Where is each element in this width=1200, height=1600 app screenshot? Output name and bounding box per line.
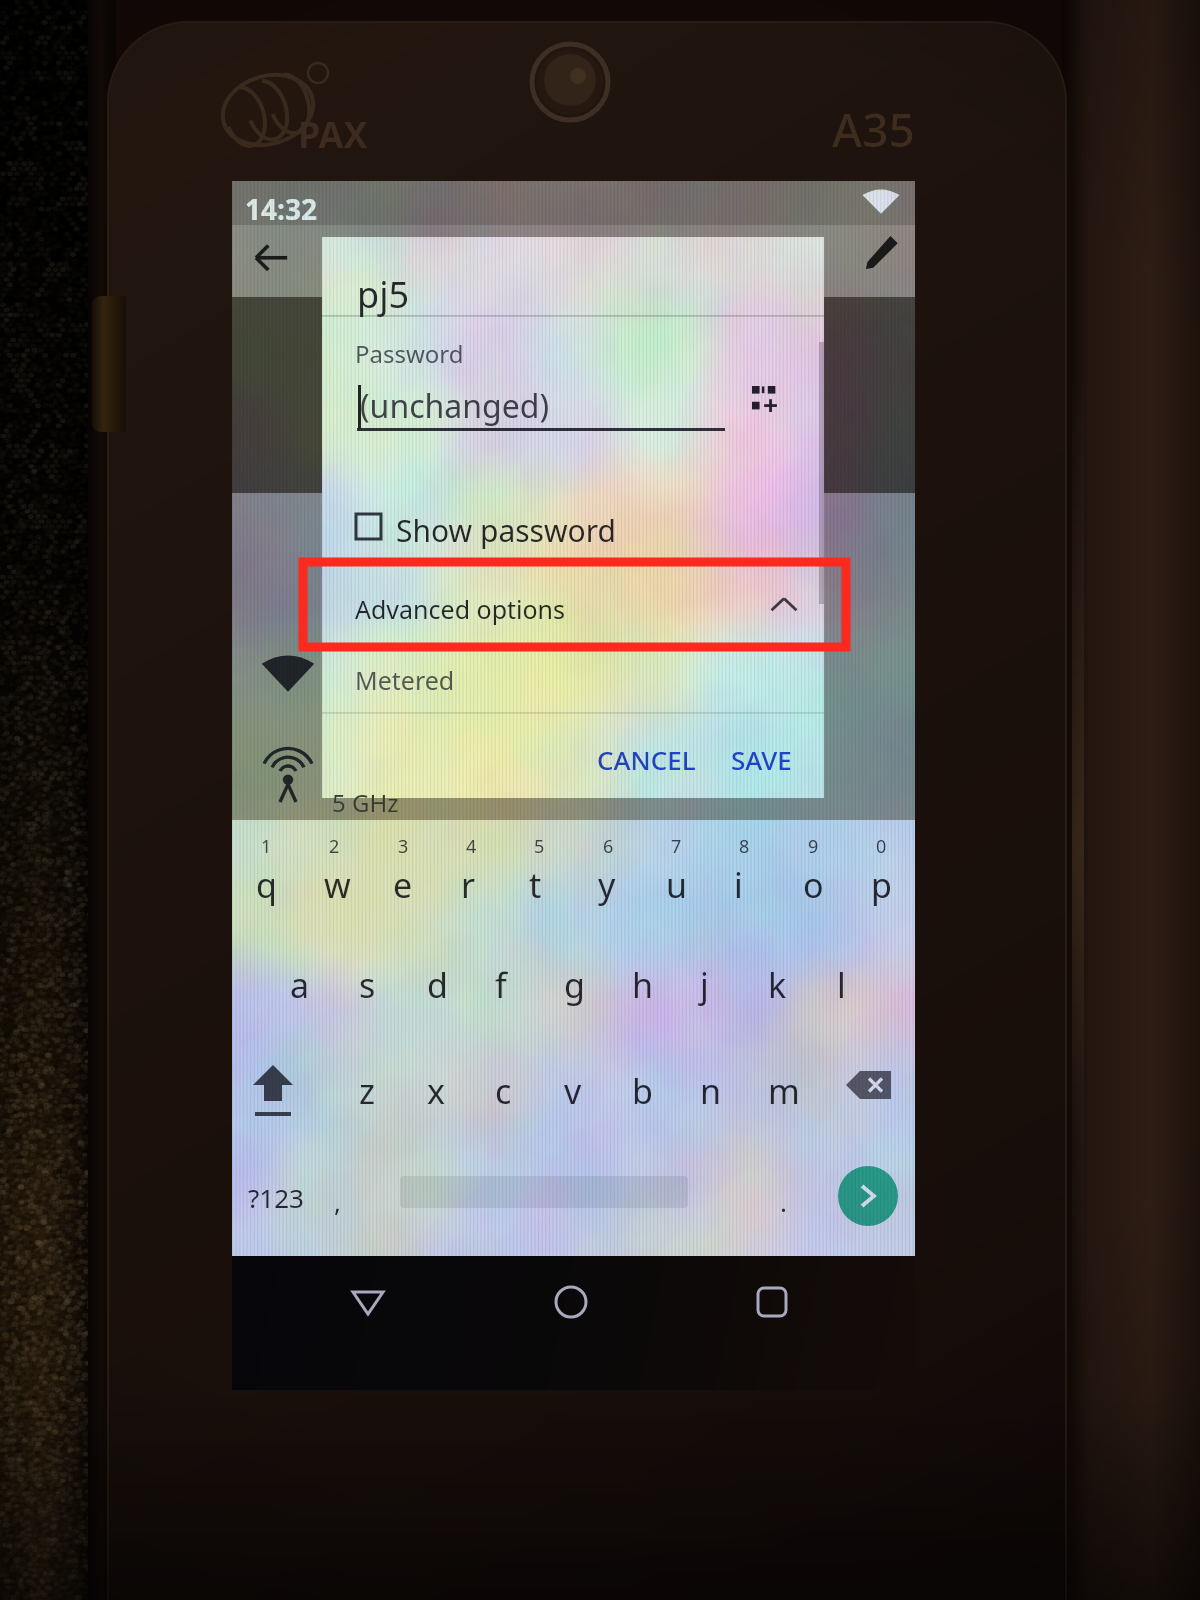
button[interactable]: Advanced options: [322, 566, 824, 644]
button[interactable]: Recent apps: [742, 1272, 806, 1334]
staticText: r: [461, 862, 476, 908]
button[interactable]: Metered: [322, 646, 824, 710]
staticText: 2: [329, 834, 340, 859]
button[interactable]: Enter: [838, 1166, 900, 1228]
staticText: SAVE: [731, 742, 792, 777]
staticText: Show password: [396, 510, 616, 551]
staticText: l: [837, 962, 846, 1008]
staticText: a: [290, 962, 310, 1008]
staticText: 4: [466, 834, 477, 859]
staticText: b: [632, 1068, 653, 1114]
button[interactable]: Save: [718, 726, 802, 778]
staticText: u: [666, 862, 688, 908]
button[interactable]: Home: [540, 1272, 604, 1334]
staticText: 1: [261, 834, 272, 859]
button[interactable]: Delete: [836, 1052, 906, 1122]
staticText: 14:32: [245, 190, 317, 228]
staticText: 5 GHz: [332, 786, 399, 819]
button[interactable]: Cancel: [584, 726, 700, 778]
staticText: (unchanged): [360, 384, 550, 428]
staticText: 9: [808, 834, 819, 859]
staticText: CANCEL: [597, 742, 696, 777]
staticText: p: [871, 862, 892, 908]
button[interactable]: Password field: [352, 360, 728, 438]
staticText: Metered: [355, 663, 455, 697]
staticText: n: [700, 1068, 722, 1114]
staticText: .: [780, 1184, 787, 1219]
staticText: 3: [398, 834, 409, 859]
staticText: m: [768, 1068, 800, 1114]
staticText: t: [529, 862, 542, 908]
staticText: Advanced options: [355, 592, 566, 626]
staticText: k: [768, 962, 787, 1008]
staticText: c: [495, 1068, 512, 1114]
staticText: PAX: [298, 110, 368, 159]
button[interactable]: Show password: [348, 496, 678, 552]
staticText: w: [324, 862, 351, 908]
staticText: x: [427, 1068, 445, 1114]
button[interactable]: Symbols: [238, 1166, 318, 1222]
staticText: 6: [603, 834, 614, 859]
staticText: ?123: [248, 1180, 304, 1215]
staticText: v: [564, 1068, 582, 1114]
button[interactable]: Shift: [240, 1052, 310, 1122]
button[interactable]: Space: [400, 1166, 712, 1222]
staticText: y: [598, 862, 616, 908]
staticText: j: [700, 962, 709, 1008]
staticText: z: [359, 1068, 375, 1114]
button[interactable]: Edit: [840, 210, 914, 290]
staticText: A35: [832, 98, 915, 161]
staticText: h: [632, 962, 654, 1008]
staticText: d: [427, 962, 448, 1008]
staticText: 8: [739, 834, 750, 859]
staticText: pj5: [357, 270, 410, 319]
staticText: s: [359, 962, 376, 1008]
staticText: 7: [671, 834, 682, 859]
staticText: e: [393, 862, 413, 908]
staticText: i: [734, 862, 743, 908]
button[interactable]: Navigate up: [236, 214, 314, 290]
button[interactable]: Back: [336, 1272, 400, 1334]
staticText: Password: [355, 337, 464, 370]
staticText: ,: [334, 1184, 341, 1219]
staticText: o: [803, 862, 824, 908]
staticText: 0: [876, 834, 887, 859]
staticText: g: [564, 962, 585, 1008]
staticText: q: [256, 862, 277, 908]
button[interactable]: Scan QR code: [736, 366, 802, 428]
staticText: 5: [534, 834, 545, 859]
staticText: f: [495, 962, 507, 1008]
